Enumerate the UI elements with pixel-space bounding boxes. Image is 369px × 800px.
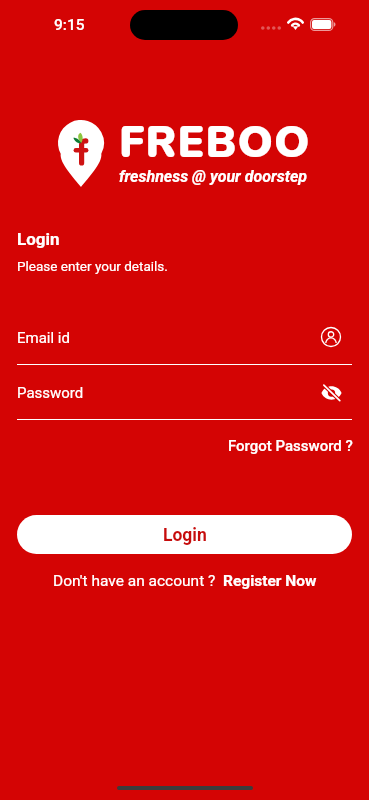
staticText: freshness @ your doorstep [119, 167, 307, 186]
staticText: Don't have an account ? [53, 572, 216, 590]
staticText: Login [163, 525, 207, 546]
button[interactable]: Register Now [223, 572, 317, 590]
button[interactable]: Login [17, 515, 352, 554]
staticText: Please enter your details. [17, 258, 168, 274]
staticText: Email id [17, 329, 70, 347]
button[interactable]: Account [318, 324, 344, 350]
staticText: Login [17, 229, 60, 249]
staticText: FREBOO [119, 113, 311, 173]
button[interactable]: Forgot Password ? [228, 437, 353, 455]
button[interactable]: Show password [321, 383, 342, 402]
staticText: 9:15 [54, 16, 85, 34]
staticText: Password [17, 384, 84, 402]
